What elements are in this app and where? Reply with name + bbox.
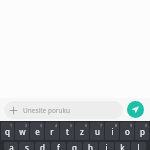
staticText: i bbox=[111, 126, 114, 137]
button[interactable]: e bbox=[30, 122, 44, 140]
button[interactable]: a bbox=[4, 142, 18, 150]
button[interactable]: Send bbox=[127, 101, 144, 118]
button[interactable]: q bbox=[1, 122, 14, 140]
button[interactable]: r bbox=[45, 122, 59, 140]
staticText: w bbox=[19, 126, 26, 137]
staticText: 9 bbox=[130, 123, 133, 128]
staticText: o bbox=[125, 126, 130, 137]
staticText: s bbox=[25, 142, 29, 150]
button[interactable]: l bbox=[131, 142, 146, 150]
staticText: 4 bbox=[55, 123, 58, 128]
staticText: 1 bbox=[10, 123, 13, 128]
button[interactable]: h bbox=[83, 142, 98, 150]
button[interactable]: d bbox=[35, 142, 50, 150]
staticText: f bbox=[57, 142, 60, 150]
staticText: t bbox=[66, 126, 69, 137]
button[interactable]: z bbox=[75, 122, 89, 140]
staticText: k bbox=[120, 142, 125, 150]
button[interactable]: p bbox=[135, 122, 149, 140]
staticText: r bbox=[50, 126, 54, 137]
staticText: 3 bbox=[40, 123, 43, 128]
staticText: 8 bbox=[115, 123, 118, 128]
button[interactable]: f bbox=[51, 142, 66, 150]
button[interactable]: j bbox=[99, 142, 114, 150]
button[interactable]: w bbox=[15, 122, 29, 140]
staticText: d bbox=[40, 142, 45, 150]
button[interactable]: k bbox=[115, 142, 130, 150]
staticText: 7 bbox=[100, 123, 103, 128]
staticText: a bbox=[9, 142, 14, 150]
button[interactable]: u bbox=[90, 122, 104, 140]
staticText: q bbox=[5, 126, 10, 137]
staticText: 6 bbox=[85, 123, 88, 128]
button[interactable]: t bbox=[60, 122, 74, 140]
button[interactable]: i bbox=[105, 122, 119, 140]
button[interactable]: o bbox=[120, 122, 134, 140]
staticText: Unesite poruku bbox=[23, 106, 71, 115]
staticText: e bbox=[35, 126, 40, 137]
staticText: 5 bbox=[70, 123, 73, 128]
staticText: g bbox=[72, 142, 77, 150]
staticText: z bbox=[80, 126, 84, 137]
staticText: j bbox=[105, 142, 108, 150]
staticText: h bbox=[88, 142, 93, 150]
button[interactable]: s bbox=[19, 142, 34, 150]
button[interactable]: Unesite poruku bbox=[4, 101, 123, 119]
staticText: l bbox=[137, 142, 140, 150]
staticText: u bbox=[95, 126, 100, 137]
staticText: 2 bbox=[25, 123, 28, 128]
staticText: p bbox=[140, 126, 145, 137]
button[interactable]: g bbox=[67, 142, 82, 150]
staticText: 0 bbox=[145, 123, 148, 128]
